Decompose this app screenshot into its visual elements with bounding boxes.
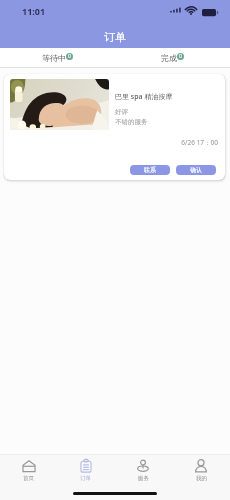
button[interactable]: 确认 xyxy=(176,165,216,175)
button[interactable]: 我的 xyxy=(172,455,230,483)
staticText: 不错的服务 xyxy=(115,118,148,126)
staticText: 11:01 xyxy=(22,5,46,17)
other: 首页 xyxy=(22,459,36,473)
staticText: 0 xyxy=(68,53,71,60)
staticText: 订单 xyxy=(80,475,91,482)
button[interactable]: 服务 xyxy=(114,455,172,483)
staticText: 完成 xyxy=(161,53,177,63)
staticText: 巴里 spa 精油按摩 xyxy=(115,92,173,102)
other: 订单 xyxy=(79,459,93,473)
staticText: 0 xyxy=(179,53,182,60)
button[interactable]: 联系 xyxy=(130,165,170,175)
staticText: 6/26 17：00 xyxy=(4,138,218,147)
button[interactable]: 等待中 xyxy=(0,48,115,68)
staticText: 订单 xyxy=(104,30,126,44)
staticText: 首页 xyxy=(23,475,34,482)
other: 服务 xyxy=(136,459,150,473)
staticText: 好评 xyxy=(115,108,128,116)
staticText: 服务 xyxy=(138,475,149,482)
staticText: 确认 xyxy=(190,166,202,174)
button[interactable]: 巴里 spa 精油按摩 xyxy=(4,74,225,180)
button[interactable]: 订单 xyxy=(57,455,114,483)
staticText: 等待中 xyxy=(42,53,66,63)
staticText: 联系 xyxy=(144,166,156,174)
other: 我的 xyxy=(194,459,208,473)
button[interactable]: 首页 xyxy=(0,455,57,483)
staticText: 我的 xyxy=(196,475,207,482)
button[interactable]: 完成 xyxy=(115,48,230,68)
